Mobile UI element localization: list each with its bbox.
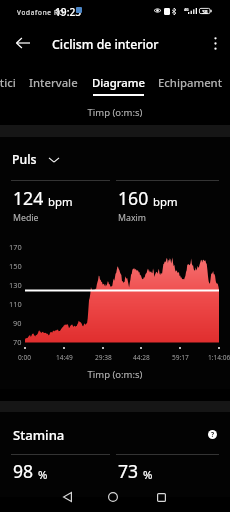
button[interactable]: Home [95,479,131,512]
staticText: Intervale [29,75,78,90]
staticText: 73 [118,459,139,483]
staticText: Diagrame [92,75,145,90]
button[interactable]: Back [6,24,40,62]
staticText: Statistici [0,75,16,90]
staticText: % [143,467,153,482]
staticText: 170 [9,242,22,252]
staticText: Vodafone RO [17,8,65,17]
staticText: 44:28 [133,353,150,362]
staticText: Ciclism de interior [52,36,159,53]
staticText: 14:49 [56,353,73,362]
button[interactable]: More options [200,24,230,62]
staticText: Timp (o:m:s) [0,368,230,381]
button[interactable]: Diagrame [92,64,145,94]
button[interactable]: Recents [143,479,179,512]
button[interactable]: Intervale [25,64,81,94]
staticText: 110 [9,299,22,309]
staticText: Timp (o:m:s) [0,106,230,119]
staticText: 59:17 [172,353,189,362]
button[interactable]: Help [204,426,220,442]
staticText: 124 [13,186,44,210]
button[interactable]: Echipament [155,64,225,94]
staticText: Echipament [158,75,223,90]
staticText: ? [211,430,215,439]
staticText: bpm [153,194,178,209]
button[interactable]: Statistici [0,64,18,94]
staticText: 70 [13,337,22,347]
staticText: Medie [13,212,39,224]
staticText: 150 [9,261,22,271]
staticText: 38 [202,9,208,16]
staticText: 4G [184,7,189,12]
staticText: % [38,467,48,482]
staticText: Maxim [118,212,147,224]
staticText: 130 [9,280,22,290]
staticText: bpm [48,194,73,209]
staticText: 19:25 [55,5,82,19]
staticText: 29:38 [95,353,112,362]
staticText: Puls [12,151,37,168]
staticText: 1:14:06 [208,353,230,362]
button[interactable]: Puls [10,148,59,172]
button[interactable]: Back [49,479,85,512]
staticText: 90 [13,318,22,328]
staticText: 0:00 [18,353,32,362]
staticText: 98 [13,459,34,483]
staticText: 160 [118,186,149,210]
staticText: Stamina [13,426,65,444]
